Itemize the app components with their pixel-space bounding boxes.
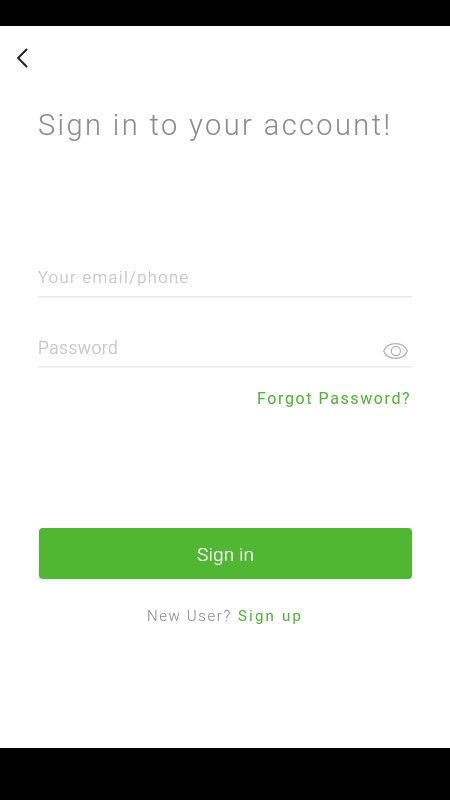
button[interactable]: Sign up: [238, 607, 304, 625]
button[interactable]: Back: [6, 41, 39, 74]
staticText: Your email/phone: [38, 268, 190, 287]
staticText: Password: [38, 338, 119, 359]
staticText: Forgot Password?: [257, 389, 412, 408]
staticText: Sign in: [197, 543, 255, 565]
button[interactable]: Sign in: [39, 528, 412, 579]
button[interactable]: Your email/phone: [38, 268, 190, 287]
button[interactable]: Password: [38, 338, 119, 359]
staticText: Sign in to your account!: [38, 108, 393, 142]
staticText: New User?: [147, 607, 238, 625]
button[interactable]: Show password: [379, 335, 411, 367]
button[interactable]: Forgot Password?: [257, 389, 412, 408]
